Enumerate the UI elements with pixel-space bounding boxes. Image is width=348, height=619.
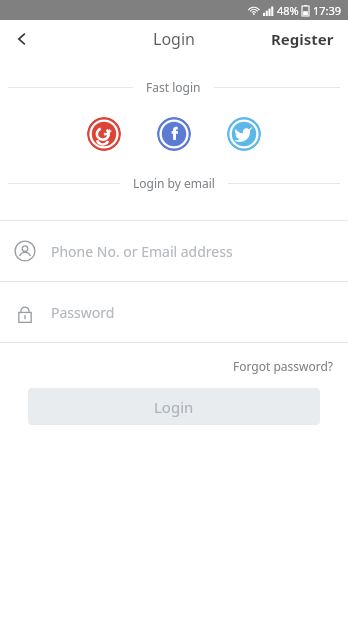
staticText: Fast login bbox=[146, 79, 201, 95]
button[interactable]: Sign in with Twitter bbox=[227, 117, 261, 151]
button[interactable]: Password bbox=[0, 282, 348, 342]
staticText: 17:39 bbox=[313, 3, 342, 18]
staticText: 48% bbox=[277, 3, 299, 18]
staticText: Login bbox=[154, 397, 194, 417]
button[interactable]: Register bbox=[257, 20, 348, 57]
staticText: Register bbox=[271, 29, 334, 49]
staticText: Login by email bbox=[133, 175, 215, 191]
button[interactable]: Sign in with Google bbox=[87, 117, 121, 151]
staticText: Login bbox=[153, 28, 195, 50]
button[interactable]: Back bbox=[0, 20, 44, 57]
button[interactable]: Login bbox=[28, 388, 320, 425]
button[interactable]: Sign in with Facebook bbox=[157, 117, 191, 151]
button[interactable]: Forgot password? bbox=[219, 356, 348, 376]
staticText: Forgot password? bbox=[233, 358, 334, 374]
staticText: Password bbox=[51, 303, 115, 322]
button[interactable]: Phone No. or Email address bbox=[0, 221, 348, 281]
staticText: Phone No. or Email address bbox=[51, 242, 233, 261]
